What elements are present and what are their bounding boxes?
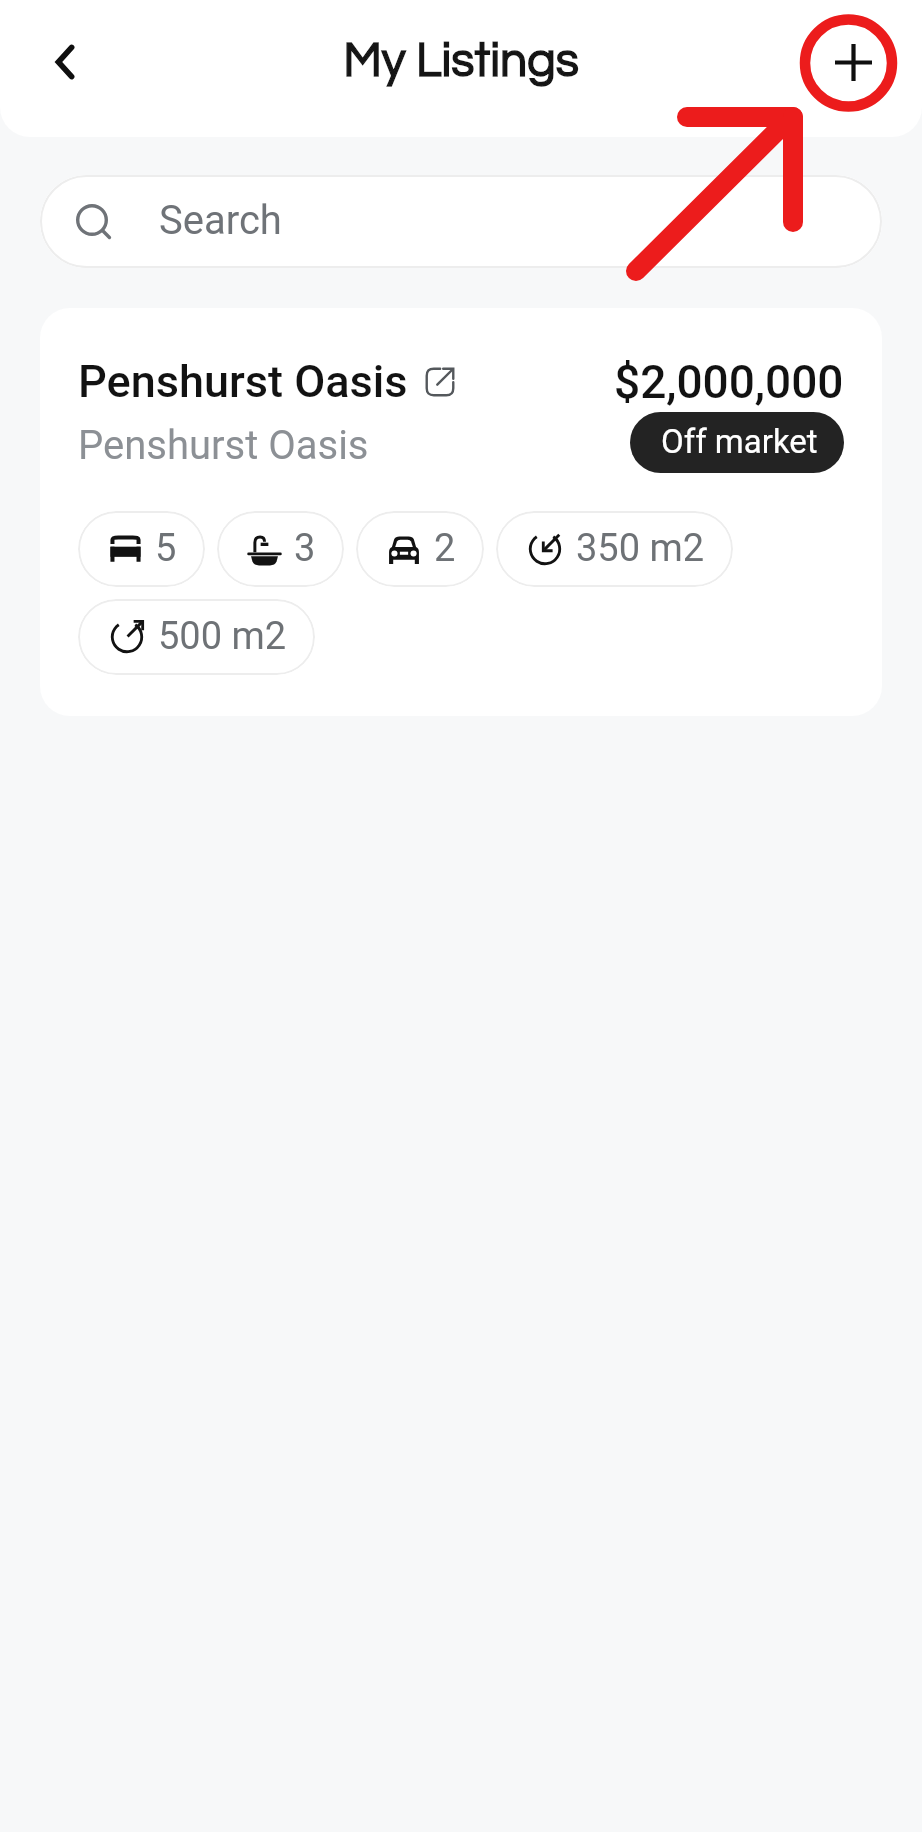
button[interactable]: 2 — [356, 511, 484, 587]
button[interactable]: Search — [40, 175, 882, 268]
staticText: Search — [159, 197, 282, 244]
button[interactable]: Back — [25, 22, 105, 102]
staticText: 350 m2 — [576, 526, 705, 571]
button[interactable]: 3 — [217, 511, 344, 587]
button[interactable]: Add listing — [813, 22, 893, 102]
button[interactable]: Open listing — [423, 365, 457, 399]
staticText: $2,000,000 — [614, 355, 844, 409]
button[interactable]: 350 m2 — [496, 511, 733, 587]
staticText: Penshurst Oasis — [78, 422, 369, 469]
staticText: Penshurst Oasis — [78, 355, 408, 408]
staticText: My Listings — [343, 37, 579, 86]
button[interactable]: 5 — [78, 511, 205, 587]
staticText: 500 m2 — [158, 614, 287, 659]
staticText: 3 — [294, 526, 316, 571]
button[interactable]: 500 m2 — [78, 599, 315, 675]
staticText: Off market — [661, 422, 818, 461]
staticText: 5 — [155, 526, 177, 571]
button[interactable]: Off market — [630, 412, 844, 473]
button[interactable]: Penshurst Oasis — [40, 308, 882, 716]
staticText: 2 — [434, 526, 456, 571]
staticText: My Listings — [343, 37, 579, 86]
